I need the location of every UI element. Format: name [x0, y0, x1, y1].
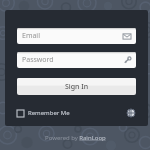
button[interactable]: Change language — [126, 108, 136, 118]
staticText: Remember Me — [28, 109, 70, 117]
staticText: Sign In — [65, 82, 89, 92]
button[interactable]: Sign In — [17, 78, 136, 95]
button[interactable]: Email — [17, 28, 136, 44]
staticText: Powered by — [44, 134, 79, 142]
staticText: Email — [22, 31, 40, 41]
button[interactable]: Password — [17, 52, 136, 68]
staticText: Password — [22, 55, 54, 65]
button[interactable]: Remember Me — [17, 108, 70, 118]
button[interactable]: RainLoop — [79, 134, 106, 142]
